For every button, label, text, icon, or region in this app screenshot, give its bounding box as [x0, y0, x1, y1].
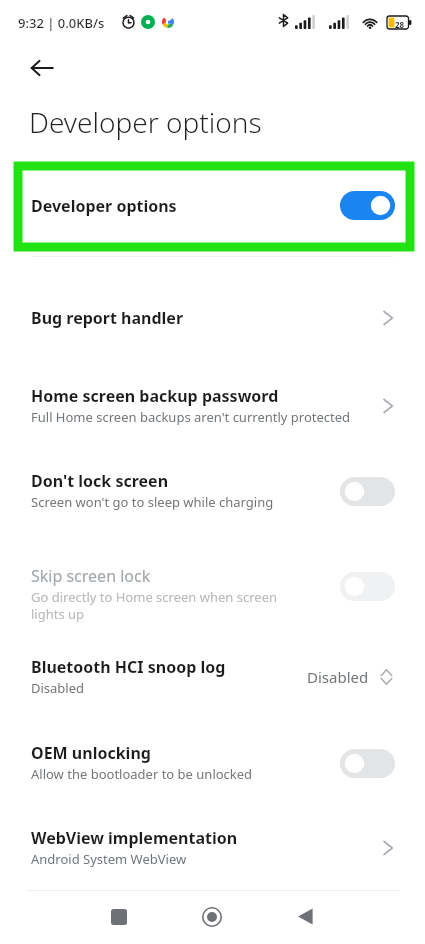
staticText: 9:32 | 0.0KB/s: [18, 14, 105, 32]
staticText: Home screen backup password: [31, 385, 279, 407]
button[interactable]: Bug report handler: [0, 282, 425, 354]
button[interactable]: Back: [20, 46, 64, 90]
staticText: Don't lock screen: [31, 470, 169, 492]
staticText: 28: [395, 19, 405, 30]
staticText: Go directly to Home screen when screen l…: [31, 588, 303, 623]
button[interactable]: Home: [190, 895, 234, 939]
button[interactable]: Developer options: [0, 163, 425, 248]
button[interactable]: Bluetooth HCI snoop log: [0, 641, 425, 713]
staticText: Skip screen lock: [31, 565, 151, 587]
staticText: Developer options: [29, 103, 262, 141]
button[interactable]: Don't lock screen: [0, 455, 425, 527]
staticText: Bluetooth HCI snoop log: [31, 656, 226, 678]
staticText: WebView implementation: [31, 827, 238, 849]
staticText: Allow the bootloader to be unlocked: [31, 765, 371, 783]
staticText: Bug report handler: [31, 307, 184, 329]
staticText: Android System WebView: [31, 850, 371, 868]
button[interactable]: Home screen backup password: [0, 370, 425, 442]
staticText: OEM unlocking: [31, 742, 151, 764]
staticText: Disabled: [31, 679, 371, 697]
button[interactable]: Back: [283, 895, 327, 939]
button[interactable]: Skip screen lock: [0, 540, 425, 632]
staticText: Disabled: [307, 667, 369, 687]
staticText: Screen won't go to sleep while charging: [31, 493, 371, 511]
staticText: Developer options: [31, 195, 177, 217]
staticText: Full Home screen backups aren't currentl…: [31, 408, 371, 426]
button[interactable]: WebView implementation: [0, 812, 425, 884]
button[interactable]: OEM unlocking: [0, 727, 425, 799]
button[interactable]: Recent apps: [97, 895, 141, 939]
